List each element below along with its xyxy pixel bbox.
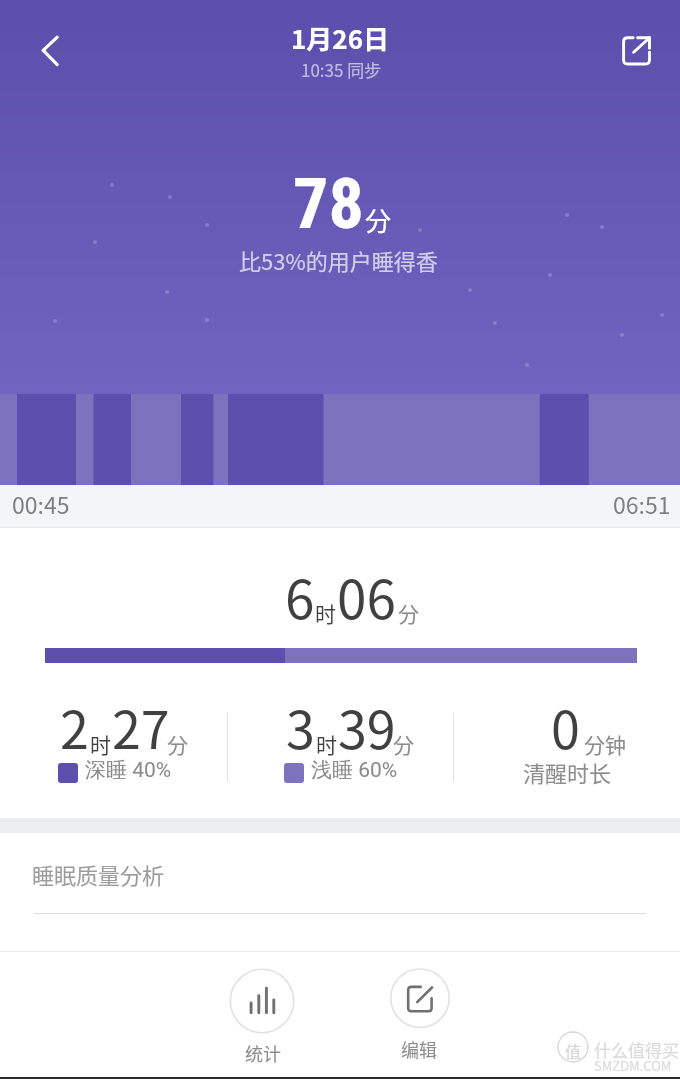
- staticText: 27: [112, 689, 170, 764]
- staticText: 6: [285, 558, 315, 635]
- staticText: 00:45: [12, 487, 70, 520]
- staticText: 什么值得买: [594, 1037, 679, 1062]
- staticText: 睡眠质量分析: [32, 858, 165, 890]
- button[interactable]: Back: [14, 14, 86, 86]
- staticText: 编辑: [401, 1036, 437, 1062]
- staticText: 06:51: [613, 487, 671, 520]
- staticText: 78: [293, 163, 364, 245]
- staticText: 06: [337, 558, 396, 635]
- staticText: 0: [551, 689, 580, 764]
- staticText: 分钟: [584, 729, 626, 759]
- button[interactable]: 编辑: [380, 958, 460, 1070]
- staticText: 时: [90, 729, 111, 759]
- button[interactable]: [0, 833, 680, 951]
- staticText: 值: [565, 1039, 582, 1062]
- staticText: 比53%的用户睡得香: [239, 244, 438, 276]
- button[interactable]: Share: [601, 15, 673, 87]
- staticText: 10:35 同步: [301, 57, 382, 82]
- staticText: 3: [286, 689, 315, 764]
- staticText: 39: [338, 689, 396, 764]
- staticText: 统计: [245, 1040, 281, 1066]
- staticText: 分: [393, 729, 414, 759]
- staticText: 时: [316, 729, 337, 759]
- staticText: 清醒时长: [523, 756, 612, 788]
- staticText: SMZDM.COM: [594, 1056, 672, 1075]
- staticText: 深睡 40%: [85, 757, 172, 783]
- button[interactable]: 统计: [222, 961, 302, 1073]
- staticText: 分: [167, 729, 188, 759]
- staticText: 1月26日: [291, 19, 390, 57]
- staticText: 分: [365, 201, 392, 239]
- staticText: 时: [315, 598, 336, 628]
- staticText: 分: [398, 598, 419, 628]
- staticText: 浅睡 60%: [311, 757, 398, 783]
- staticText: 2: [60, 689, 89, 764]
